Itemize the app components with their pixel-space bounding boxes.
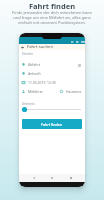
button[interactable]: Mitfahrer: [22, 87, 82, 96]
staticText: Fahrt finden: [0, 1, 104, 11]
button[interactable]: Abfahrt: [22, 60, 82, 69]
staticText: Strecke: [22, 52, 33, 56]
staticText: 11.05.2019 12:30: [28, 80, 56, 85]
staticText: Ankunft: [28, 71, 41, 76]
staticText: Abfahrt: [28, 62, 41, 67]
button[interactable]: Zurück: [19, 44, 25, 50]
button[interactable]: Startbildschirm: [48, 174, 56, 182]
button[interactable]: Zurück: [30, 174, 38, 182]
staticText: Fahrt finden: [41, 122, 63, 127]
button[interactable]: Zurück: [19, 44, 85, 50]
button[interactable]: Ankunft: [22, 69, 82, 78]
staticText: Umkreis: [22, 102, 35, 106]
staticText: Finde jemanden der dich mitnehmen kann u…: [10, 10, 94, 25]
staticText: Fahrt suchen: [27, 44, 54, 50]
button[interactable]: 11.05.2019 12:30: [22, 78, 82, 87]
staticText: Mitfahrer: [28, 89, 43, 94]
button[interactable]: Übersicht: [67, 174, 75, 182]
button[interactable]: Fahrt finden: [22, 119, 82, 129]
button[interactable]: Haustiere: [60, 89, 82, 94]
staticText: Haustiere: [66, 89, 82, 94]
button[interactable]: Tauschen: [76, 62, 82, 68]
